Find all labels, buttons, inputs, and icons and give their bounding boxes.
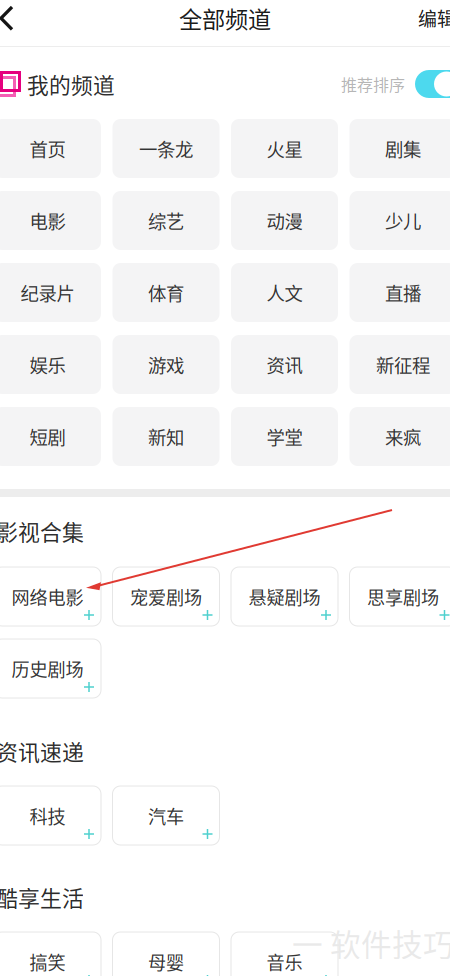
staticText: 来疯 xyxy=(385,423,421,450)
staticText: 搞笑 xyxy=(29,948,65,975)
staticText: 酷享生活 xyxy=(0,881,84,913)
staticText: 新知 xyxy=(148,423,184,450)
staticText: 综艺 xyxy=(148,207,184,234)
staticText: 科技 xyxy=(29,802,65,829)
staticText: 新征程 xyxy=(376,351,430,378)
button[interactable]: 音乐 xyxy=(231,932,338,976)
staticText: 编辑 xyxy=(418,4,450,32)
button[interactable]: 编辑 xyxy=(418,0,450,41)
button[interactable]: 网络电影 xyxy=(0,567,101,626)
staticText: 学堂 xyxy=(266,423,302,450)
button[interactable]: 思享剧场 xyxy=(349,567,450,626)
button[interactable]: 剧集 xyxy=(349,119,450,178)
staticText: 少儿 xyxy=(385,207,421,234)
button[interactable]: 历史剧场 xyxy=(0,639,101,698)
button[interactable]: 人文 xyxy=(231,263,338,322)
staticText: 首页 xyxy=(29,135,65,162)
button[interactable]: 推荐排序 xyxy=(415,70,450,98)
staticText: 汽车 xyxy=(148,802,184,829)
button[interactable]: 悬疑剧场 xyxy=(231,567,338,626)
button[interactable]: 短剧 xyxy=(0,407,101,466)
staticText: 一条龙 xyxy=(139,135,193,162)
button[interactable]: 一条龙 xyxy=(112,119,219,178)
staticText: 体育 xyxy=(148,279,184,306)
button[interactable]: 来疯 xyxy=(349,407,450,466)
staticText: 剧集 xyxy=(385,135,421,162)
staticText: 动漫 xyxy=(266,207,302,234)
button[interactable]: 汽车 xyxy=(112,786,219,845)
staticText: 宠爱剧场 xyxy=(130,583,202,610)
staticText: 网络电影 xyxy=(11,583,83,610)
staticText: 全部频道 xyxy=(179,1,271,35)
button[interactable]: 游戏 xyxy=(112,335,219,394)
staticText: 人文 xyxy=(266,279,302,306)
staticText: 影视合集 xyxy=(0,515,84,547)
button[interactable]: 推荐排序 xyxy=(341,64,405,104)
staticText: 电影 xyxy=(29,207,65,234)
button[interactable]: 学堂 xyxy=(231,407,338,466)
button[interactable]: 搞笑 xyxy=(0,932,101,976)
button[interactable]: 动漫 xyxy=(231,191,338,250)
staticText: 直播 xyxy=(385,279,421,306)
button[interactable]: 火星 xyxy=(231,119,338,178)
staticText: 一 软件技巧 xyxy=(292,921,450,965)
button[interactable]: 娱乐 xyxy=(0,335,101,394)
button[interactable]: 首页 xyxy=(0,119,101,178)
staticText: 资讯速递 xyxy=(0,735,84,767)
staticText: 母婴 xyxy=(148,948,184,975)
staticText: 历史剧场 xyxy=(11,655,83,682)
button[interactable]: 少儿 xyxy=(349,191,450,250)
staticText: 纪录片 xyxy=(20,279,74,306)
staticText: 思享剧场 xyxy=(367,583,439,610)
button[interactable]: 资讯 xyxy=(231,335,338,394)
button[interactable]: 电影 xyxy=(0,191,101,250)
button[interactable]: 新知 xyxy=(112,407,219,466)
staticText: 悬疑剧场 xyxy=(248,583,320,610)
button[interactable]: 返回 xyxy=(0,0,44,46)
staticText: 短剧 xyxy=(29,423,65,450)
staticText: 我的频道 xyxy=(27,68,115,100)
button[interactable]: 科技 xyxy=(0,786,101,845)
staticText: 火星 xyxy=(266,135,302,162)
staticText: 音乐 xyxy=(266,948,302,975)
button[interactable]: 体育 xyxy=(112,263,219,322)
button[interactable]: 母婴 xyxy=(112,932,219,976)
staticText: 娱乐 xyxy=(29,351,65,378)
button[interactable]: 综艺 xyxy=(112,191,219,250)
button[interactable]: 直播 xyxy=(349,263,450,322)
staticText: 推荐排序 xyxy=(341,72,405,96)
button[interactable]: 新征程 xyxy=(349,335,450,394)
staticText: 游戏 xyxy=(148,351,184,378)
staticText: 资讯 xyxy=(266,351,302,378)
button[interactable]: 宠爱剧场 xyxy=(112,567,219,626)
button[interactable]: 纪录片 xyxy=(0,263,101,322)
